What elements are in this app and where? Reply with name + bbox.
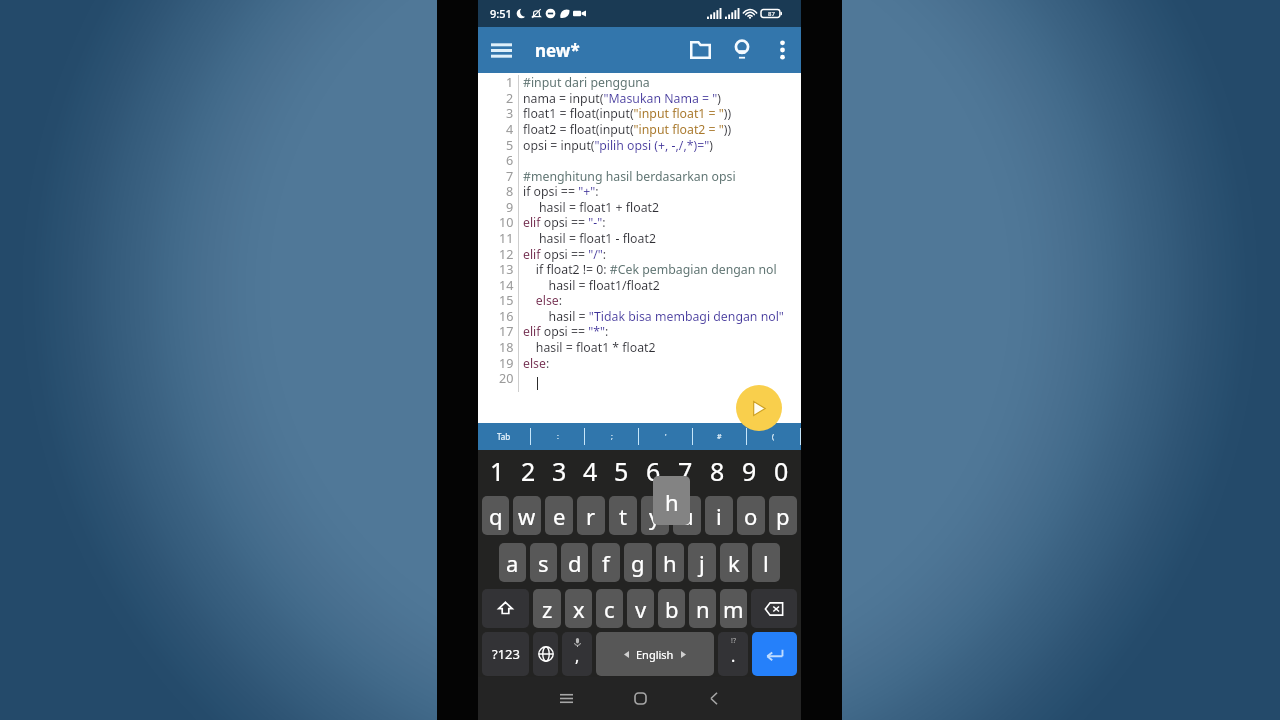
button[interactable]: n (689, 589, 716, 628)
button[interactable]: More options (763, 31, 801, 69)
button[interactable]: t (609, 496, 637, 535)
button[interactable]: y (641, 496, 669, 535)
staticText: 1 (490, 454, 505, 482)
button[interactable]: ' (639, 423, 692, 450)
button[interactable]: ( (747, 423, 800, 450)
staticText: p (776, 501, 790, 531)
staticText: 19 (499, 355, 514, 371)
button[interactable]: z (533, 589, 561, 628)
button[interactable]: # (693, 423, 746, 450)
button[interactable]: Backspace (751, 589, 797, 628)
staticText: l (763, 548, 769, 578)
staticText: y (649, 501, 661, 531)
button[interactable]: c (596, 589, 623, 628)
button[interactable]: i (705, 496, 733, 535)
staticText: . (731, 645, 736, 667)
button[interactable]: m (720, 589, 747, 628)
button[interactable]: a (499, 543, 526, 582)
button[interactable]: r (577, 496, 605, 535)
staticText: u (680, 501, 694, 531)
button[interactable]: Run (736, 385, 782, 431)
button[interactable]: b (658, 589, 685, 628)
button[interactable]: p (769, 496, 797, 535)
button[interactable]: Back (699, 683, 729, 713)
staticText: #input dari pengguna (523, 74, 650, 90)
button[interactable]: d (561, 543, 588, 582)
button[interactable]: j (688, 543, 716, 582)
staticText: v (635, 594, 647, 624)
staticText: English (636, 647, 674, 662)
button[interactable]: s (530, 543, 557, 582)
staticText: 5 (506, 137, 514, 153)
staticText: 9 (506, 199, 514, 215)
staticText: w (518, 501, 536, 531)
button[interactable]: w (513, 496, 541, 535)
button[interactable]: l (752, 543, 780, 582)
button[interactable]: 8 (701, 454, 733, 482)
button[interactable]: f (592, 543, 620, 582)
staticText: i (716, 501, 722, 531)
staticText: t (619, 501, 627, 531)
staticText: elif opsi == "*": (523, 323, 609, 339)
button[interactable]: 6 (637, 454, 669, 482)
staticText: 12 (499, 246, 514, 262)
button[interactable]: 4 (575, 454, 606, 482)
staticText: 15 (499, 292, 514, 308)
staticText: s (538, 548, 549, 578)
button[interactable]: ?123 (482, 632, 529, 676)
button[interactable]: , (562, 632, 592, 676)
staticText: 7 (506, 168, 514, 184)
button[interactable]: 3 (544, 454, 575, 482)
staticText: 3 (506, 105, 514, 121)
staticText: 9:51 (490, 6, 512, 21)
button[interactable]: Hints (721, 29, 763, 71)
button[interactable]: Open folder (679, 29, 721, 71)
button[interactable]: 5 (606, 454, 637, 482)
button[interactable]: e (545, 496, 573, 535)
button[interactable]: Menu (478, 27, 524, 73)
staticText: 10 (499, 214, 514, 230)
button[interactable]: x (565, 589, 592, 628)
staticText: 17 (499, 323, 514, 339)
button[interactable]: Enter (752, 632, 797, 676)
staticText: q (489, 501, 503, 531)
staticText: 87 (768, 10, 775, 18)
staticText: 2 (506, 90, 514, 106)
staticText: h (665, 487, 679, 517)
staticText: j (699, 548, 705, 578)
staticText: float1 = float(input("input float1 = ")) (523, 105, 732, 121)
button[interactable]: Switch language (533, 632, 558, 676)
button[interactable]: u (673, 496, 701, 535)
button[interactable]: 0 (765, 454, 797, 482)
staticText: g (631, 548, 645, 578)
button[interactable]: h (656, 543, 684, 582)
staticText: 4 (506, 121, 514, 137)
button[interactable]: Recent apps (551, 683, 581, 713)
staticText: 0 (774, 454, 789, 482)
button[interactable]: 9 (733, 454, 765, 482)
button[interactable]: Tab (478, 423, 530, 450)
button[interactable]: Home (625, 683, 655, 713)
staticText: hasil = float1 + float2 (523, 199, 660, 215)
staticText: b (665, 594, 679, 624)
button[interactable]: : (531, 423, 584, 450)
staticText: 4 (583, 454, 598, 482)
button[interactable]: 2 (513, 454, 544, 482)
button[interactable]: q (482, 496, 509, 535)
staticText: n (696, 594, 710, 624)
staticText: hasil = float1/float2 (523, 277, 660, 293)
button[interactable]: g (624, 543, 652, 582)
button[interactable]: Shift (482, 589, 529, 628)
button[interactable]: 7 (669, 454, 701, 482)
button[interactable]: 1 (482, 454, 513, 482)
staticText: f (602, 548, 610, 578)
button[interactable]: k (720, 543, 748, 582)
staticText: c (604, 594, 615, 624)
button[interactable]: English (596, 632, 714, 676)
staticText: h (663, 548, 677, 578)
button[interactable]: v (627, 589, 654, 628)
button[interactable]: o (737, 496, 765, 535)
button[interactable]: ; (585, 423, 638, 450)
button[interactable]: !? (718, 632, 748, 676)
staticText: # (717, 432, 722, 442)
